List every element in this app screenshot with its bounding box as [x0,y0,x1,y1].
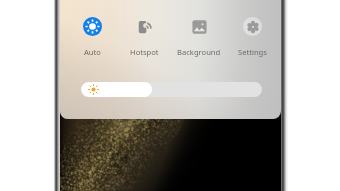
staticText: Settings [238,47,267,57]
button[interactable]: Background [173,17,225,67]
staticText: Background [177,47,221,57]
staticText: Hotspot [130,47,159,57]
button[interactable]: Auto [66,17,118,67]
staticText: Auto [84,47,101,57]
button[interactable]: Hotspot [118,17,170,67]
button[interactable]: Settings [226,17,278,67]
button[interactable]: Brightness [81,82,262,97]
